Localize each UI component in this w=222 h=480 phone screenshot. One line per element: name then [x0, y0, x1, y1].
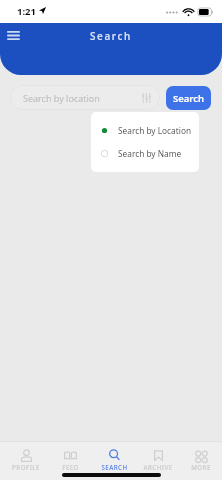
staticText: Search	[90, 29, 132, 43]
button[interactable]: Search by Location	[91, 119, 199, 142]
button[interactable]: MORE	[180, 442, 222, 471]
staticText: PROFILE	[12, 463, 40, 471]
button[interactable]: Search by Name	[91, 142, 199, 165]
button[interactable]: Menu	[2, 24, 24, 46]
button[interactable]: ARCHIVE	[136, 442, 180, 471]
staticText: SEARCH	[101, 463, 128, 471]
staticText: Search	[173, 92, 205, 105]
staticText: FEED	[62, 463, 79, 471]
button[interactable]: PROFILE	[4, 442, 48, 471]
button[interactable]: FEED	[48, 442, 92, 471]
staticText: Search by Location	[118, 125, 192, 136]
staticText: Search by Name	[118, 148, 182, 159]
staticText: ARCHIVE	[143, 463, 173, 471]
staticText: Search by location	[23, 92, 142, 104]
button[interactable]: SEARCH	[92, 442, 136, 471]
staticText: MORE	[191, 463, 211, 471]
staticText: 1:21	[17, 5, 36, 18]
button[interactable]: Search by location	[10, 85, 160, 110]
button[interactable]: Search	[166, 86, 211, 110]
